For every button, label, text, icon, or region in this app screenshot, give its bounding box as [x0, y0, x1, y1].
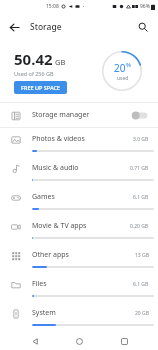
staticText: Files: [32, 279, 47, 289]
staticText: FREE UP SPACE: [21, 84, 60, 91]
staticText: Games: [32, 192, 55, 202]
button[interactable]: System: [0, 302, 158, 331]
staticText: 3.0 GB: [133, 136, 149, 143]
staticText: 0.20 GB: [130, 223, 149, 230]
staticText: Movie & TV apps: [32, 221, 87, 231]
button[interactable]: Recents: [114, 333, 134, 350]
staticText: 0.71 GB: [130, 165, 149, 172]
staticText: %: [126, 61, 131, 69]
button[interactable]: Files: [0, 273, 158, 302]
staticText: 13 GB: [135, 252, 149, 259]
staticText: 96%: [140, 3, 150, 10]
staticText: 50.42: [14, 49, 53, 69]
staticText: 6.1 GB: [133, 194, 149, 201]
staticText: 6.1 GB: [133, 281, 149, 288]
button[interactable]: Back: [5, 18, 23, 36]
button[interactable]: Back: [25, 333, 45, 350]
staticText: 20: [114, 61, 126, 75]
button[interactable]: Other apps: [0, 244, 158, 273]
staticText: Music & audio: [32, 163, 79, 173]
button[interactable]: Music & audio: [0, 157, 158, 186]
staticText: Other apps: [32, 250, 69, 260]
staticText: Photos & videos: [32, 134, 85, 144]
button[interactable]: Games: [0, 186, 158, 215]
staticText: GB: [55, 57, 66, 67]
staticText: Storage manager: [32, 110, 90, 120]
staticText: System: [32, 308, 56, 318]
button[interactable]: Search: [134, 18, 152, 36]
button[interactable]: Storage manager toggle: [130, 110, 149, 121]
staticText: Used of 256 GB: [14, 70, 54, 77]
button[interactable]: Home: [69, 333, 89, 350]
button[interactable]: Photos & videos: [0, 128, 158, 157]
button[interactable]: Movie & TV apps: [0, 215, 158, 244]
staticText: 20 GB: [135, 310, 149, 317]
staticText: Storage: [30, 21, 62, 33]
button[interactable]: FREE UP SPACE: [14, 81, 67, 94]
staticText: 15:08: [46, 3, 59, 10]
button[interactable]: Storage manager: [0, 103, 158, 127]
staticText: used: [117, 75, 129, 82]
